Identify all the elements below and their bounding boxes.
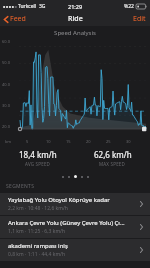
staticText: 40.0 [2, 82, 10, 87]
staticText: 5 [26, 139, 46, 144]
staticText: AVG SPEED [25, 161, 51, 167]
button[interactable]: akademi rampası iniş [0, 239, 150, 261]
staticText: 18,4 km/h [19, 149, 57, 160]
staticText: akademi rampası iniş [8, 242, 68, 250]
staticText: 30 [126, 139, 146, 144]
staticText: 25 [106, 139, 126, 144]
staticText: MAX SPEED [99, 161, 126, 167]
staticText: SEGMENTS [6, 183, 35, 190]
staticText: km [5, 139, 26, 144]
staticText: 1,1 km · 11:25 · 6,3 km/h [8, 228, 66, 235]
button[interactable] [74, 175, 77, 178]
other: Open segment [136, 245, 146, 255]
staticText: Turkcell [18, 3, 37, 10]
staticText: Speed Analysis [0, 29, 150, 37]
staticText: Ankara Çevre Yolu (Güney Çevre Yolu) Çı.… [8, 219, 125, 227]
staticText: 20.0 [2, 124, 10, 129]
staticText: %22 [124, 3, 134, 10]
staticText: Yaylabağ Yolu Otoyol Köprüye kadar [8, 196, 110, 204]
button[interactable]: Yaylabağ Yolu Otoyol Köprüye kadar [0, 193, 150, 215]
staticText: 21:29 [68, 3, 83, 10]
staticText: Edit [133, 14, 146, 24]
button[interactable]: Edit [129, 12, 150, 26]
staticText: Ride [68, 14, 83, 24]
staticText: 60.0 [2, 39, 10, 44]
button[interactable]: Feed [0, 12, 30, 26]
other: Open segment [136, 199, 146, 209]
staticText: 62,6 km/h [94, 149, 132, 160]
staticText: 30.0 [2, 103, 10, 108]
staticText: 0,8 km · 1:11 · 44,4 km/h [8, 251, 66, 258]
other: Open segment [136, 222, 146, 232]
staticText: 10 [46, 139, 66, 144]
staticText: 3G [39, 3, 46, 10]
staticText: 20 [86, 139, 106, 144]
staticText: 15 [66, 139, 86, 144]
staticText: 50.0 [2, 60, 10, 65]
staticText: 2,2 km · 10:48 · 12,6 km/h [8, 205, 68, 212]
button[interactable]: Ankara Çevre Yolu (Güney Çevre Yolu) Çı.… [0, 216, 150, 238]
staticText: Feed [10, 14, 26, 24]
